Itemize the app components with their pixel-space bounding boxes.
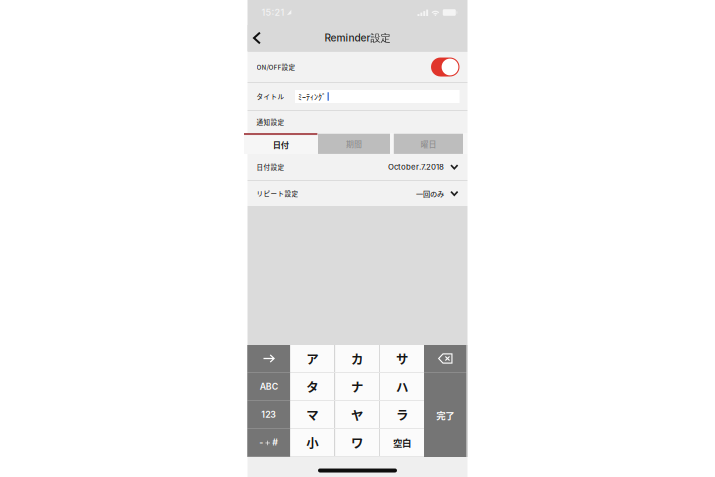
button[interactable]: ON/OFF toggle bbox=[431, 57, 459, 76]
staticText: ON/OFF設定 bbox=[256, 62, 295, 72]
button[interactable]: 日付 bbox=[244, 133, 317, 154]
button[interactable]: カ bbox=[335, 345, 379, 372]
staticText: 通知設定 bbox=[256, 117, 284, 127]
button[interactable]: 123 bbox=[247, 401, 290, 429]
staticText: ﾐｰﾃｨﾝｸﾞ bbox=[298, 91, 326, 102]
button[interactable]: ABC bbox=[247, 373, 290, 401]
staticText: サ bbox=[396, 349, 408, 367]
button[interactable]: Title text field bbox=[295, 90, 459, 103]
staticText: 一回のみ bbox=[416, 188, 444, 199]
staticText: 期間 bbox=[346, 138, 362, 150]
button[interactable]: 日付設定 bbox=[247, 154, 467, 180]
staticText: カ bbox=[351, 349, 363, 367]
staticText: 空白 bbox=[393, 436, 411, 449]
staticText: -＋# bbox=[259, 437, 278, 448]
button[interactable]: Delete bbox=[424, 345, 467, 373]
button[interactable]: Back bbox=[247, 25, 266, 51]
staticText: タイトル bbox=[256, 92, 284, 101]
button[interactable]: ヤ bbox=[335, 401, 379, 428]
button[interactable]: ハ bbox=[380, 373, 424, 400]
button[interactable]: マ bbox=[290, 401, 334, 428]
staticText: 日付設定 bbox=[256, 162, 284, 172]
staticText: 15:21 bbox=[261, 7, 284, 18]
button[interactable]: 期間 bbox=[318, 133, 390, 154]
staticText: マ bbox=[306, 405, 318, 423]
staticText: ハ bbox=[396, 377, 408, 395]
button[interactable]: 小 bbox=[290, 429, 334, 456]
button[interactable]: 空白 bbox=[380, 429, 424, 456]
staticText: タ bbox=[306, 377, 318, 395]
button[interactable]: ワ bbox=[335, 429, 379, 456]
staticText: ヤ bbox=[351, 405, 363, 423]
staticText: 完了 bbox=[436, 408, 454, 422]
button[interactable]: タ bbox=[290, 373, 334, 400]
button[interactable]: リピート設定 bbox=[247, 181, 467, 206]
staticText: 小 bbox=[306, 433, 318, 451]
button[interactable]: -＋# bbox=[247, 429, 290, 457]
staticText: ナ bbox=[351, 377, 363, 395]
button[interactable]: ラ bbox=[380, 401, 424, 428]
staticText: ラ bbox=[396, 405, 408, 423]
button[interactable]: 完了 bbox=[424, 373, 466, 457]
button[interactable]: サ bbox=[380, 345, 424, 372]
staticText: リピート設定 bbox=[256, 189, 298, 198]
staticText: 123 bbox=[261, 409, 276, 420]
staticText: ワ bbox=[351, 433, 363, 451]
button[interactable]: ア bbox=[290, 345, 334, 372]
staticText: Reminder設定 bbox=[324, 32, 390, 44]
button[interactable]: Next field bbox=[247, 345, 290, 373]
staticText: 日付 bbox=[273, 139, 289, 151]
staticText: October.7.2018 bbox=[388, 162, 444, 172]
staticText: ABC bbox=[260, 381, 278, 392]
button[interactable]: 曜日 bbox=[394, 133, 463, 154]
staticText: 曜日 bbox=[420, 138, 436, 150]
staticText: ア bbox=[306, 349, 318, 367]
button[interactable]: ナ bbox=[335, 373, 379, 400]
